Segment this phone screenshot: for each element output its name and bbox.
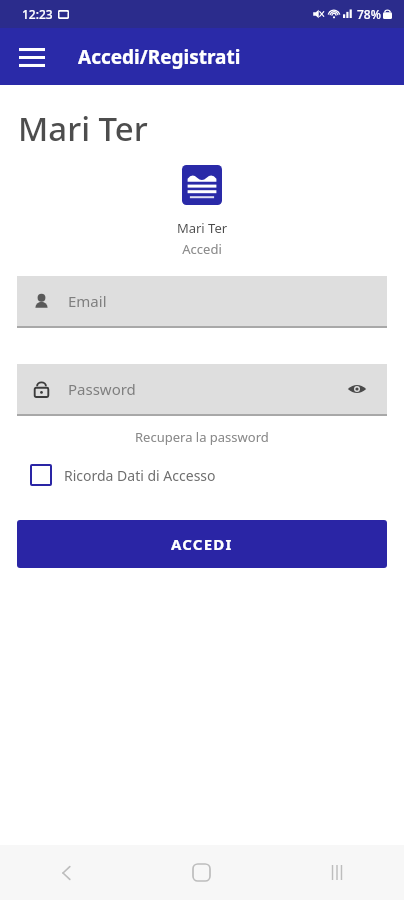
- staticText: 12:23: [22, 6, 53, 22]
- staticText: Recupera la password: [135, 428, 269, 446]
- staticText: 78%: [357, 6, 381, 22]
- button[interactable]: Home: [134, 845, 269, 900]
- button[interactable]: Recupera la password: [0, 428, 404, 446]
- staticText: Email: [68, 291, 107, 311]
- staticText: ACCEDI: [171, 534, 233, 554]
- button[interactable]: Back: [0, 845, 134, 900]
- button[interactable]: Mostra password: [343, 375, 371, 403]
- button[interactable]: Ricorda Dati di Accesso: [18, 464, 216, 486]
- staticText: Accedi/Registrati: [78, 44, 241, 70]
- button[interactable]: Password: [17, 364, 387, 416]
- staticText: Accedi: [0, 240, 404, 258]
- button[interactable]: Email: [17, 276, 387, 328]
- staticText: Ricorda Dati di Accesso: [64, 466, 216, 485]
- button[interactable]: Menu: [10, 35, 54, 79]
- staticText: Mari Ter: [18, 106, 148, 151]
- button[interactable]: Recents: [269, 845, 404, 900]
- staticText: Password: [68, 379, 136, 399]
- staticText: Mari Ter: [0, 219, 404, 237]
- button[interactable]: ACCEDI: [17, 520, 387, 568]
